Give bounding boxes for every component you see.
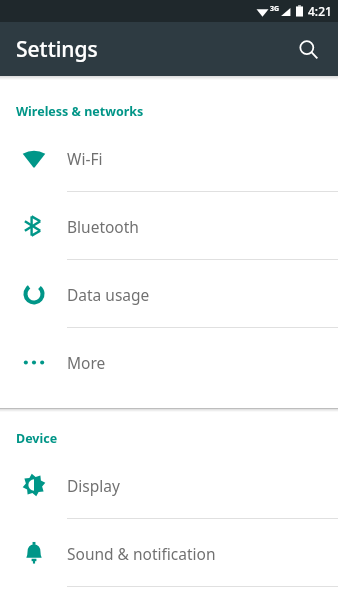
button[interactable]: Display	[0, 451, 338, 519]
staticText: More	[67, 352, 106, 373]
button[interactable]: Wi-Fi	[0, 124, 338, 192]
button[interactable]: Sound & notification	[0, 519, 338, 587]
staticText: Device	[16, 430, 58, 447]
staticText: Wireless & networks	[16, 103, 144, 120]
staticText: Data usage	[67, 284, 150, 305]
staticText: Sound & notification	[67, 543, 216, 564]
staticText: 3G	[270, 4, 280, 14]
button[interactable]: Bluetooth	[0, 192, 338, 260]
button[interactable]: More	[0, 328, 338, 396]
button[interactable]: Data usage	[0, 260, 338, 328]
staticText: Bluetooth	[67, 216, 139, 237]
staticText: 4:21	[308, 3, 332, 19]
button[interactable]: Search	[286, 27, 330, 71]
staticText: Display	[67, 475, 120, 496]
staticText: Settings	[16, 35, 98, 64]
staticText: Wi-Fi	[67, 148, 103, 169]
